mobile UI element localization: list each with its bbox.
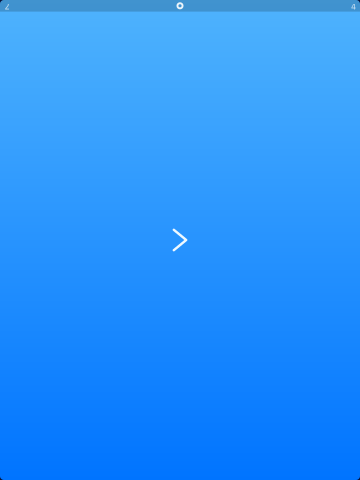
staticText: 4: [351, 1, 356, 12]
button[interactable]: Continue: [148, 208, 212, 272]
staticText: 2: [5, 1, 10, 12]
